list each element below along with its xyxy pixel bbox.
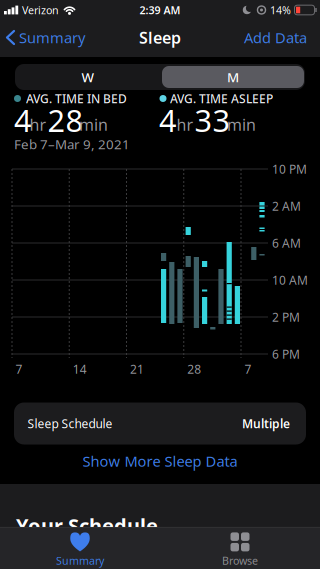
staticText: 10 PM: [272, 161, 307, 177]
staticText: min: [227, 114, 256, 135]
staticText: 7: [244, 361, 251, 377]
button[interactable]: M: [160, 64, 305, 90]
staticText: AVG. TIME IN BED: [26, 90, 127, 106]
staticText: Add Data: [244, 28, 307, 47]
button[interactable]: Show More Sleep Data: [82, 451, 237, 471]
staticText: Feb 7–Mar 9, 2021: [14, 135, 130, 153]
staticText: hr: [176, 114, 193, 135]
staticText: 6 PM: [272, 346, 300, 362]
staticText: 6 AM: [272, 235, 301, 251]
staticText: 7: [15, 361, 22, 377]
staticText: 2 PM: [272, 309, 300, 325]
staticText: Your Schedule: [16, 512, 158, 539]
staticText: Summary: [19, 28, 85, 47]
staticText: W: [81, 68, 94, 86]
staticText: 21: [130, 361, 144, 377]
button[interactable]: Add Data: [244, 28, 307, 47]
staticText: 2 AM: [272, 198, 301, 214]
staticText: 28: [47, 100, 83, 140]
staticText: 28: [187, 361, 201, 377]
staticText: Summary: [56, 553, 104, 568]
button[interactable]: Summary: [56, 532, 104, 568]
staticText: Multiple: [242, 415, 290, 431]
staticText: Sleep Schedule: [27, 415, 112, 431]
button[interactable]: W: [15, 64, 160, 90]
staticText: 4: [14, 100, 32, 140]
button[interactable]: Sleep Schedule: [14, 402, 306, 444]
staticText: 2:39 AM: [139, 3, 180, 17]
staticText: 4: [159, 100, 177, 140]
staticText: Verizon: [22, 3, 59, 17]
staticText: AVG. TIME ASLEEP: [170, 90, 273, 106]
staticText: 14: [73, 361, 87, 377]
staticText: Browse: [222, 553, 258, 568]
button[interactable]: Summary: [7, 28, 85, 47]
staticText: 14%: [270, 3, 291, 17]
staticText: 10 AM: [272, 272, 308, 288]
staticText: min: [79, 114, 108, 135]
staticText: M: [227, 68, 239, 86]
staticText: Show More Sleep Data: [82, 451, 237, 471]
staticText: Sleep: [139, 27, 181, 48]
button[interactable]: Browse: [222, 532, 258, 568]
staticText: hr: [29, 114, 46, 135]
staticText: 33: [194, 100, 230, 140]
